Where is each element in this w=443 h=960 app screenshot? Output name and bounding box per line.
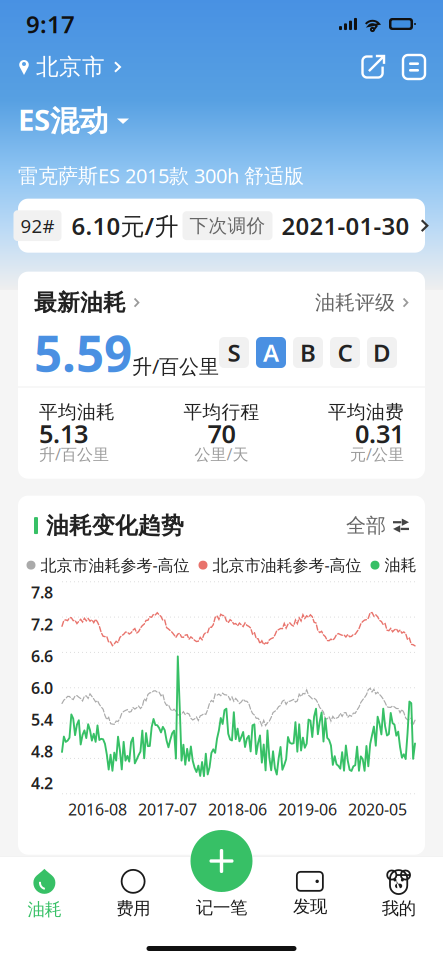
- staticText: 升/百公里: [132, 353, 219, 379]
- button[interactable]: 油耗: [0, 859, 89, 920]
- button[interactable]: 全部: [346, 513, 409, 538]
- button[interactable]: 记一笔: [190, 830, 252, 892]
- button[interactable]: 分享: [361, 55, 385, 79]
- staticText: 6.6: [31, 645, 53, 666]
- button[interactable]: D: [367, 337, 397, 368]
- staticText: 5.13: [39, 417, 88, 450]
- staticText: 北京市油耗参考-高位: [212, 554, 361, 576]
- button[interactable]: 费用: [89, 860, 178, 919]
- button[interactable]: ES混动: [18, 100, 129, 139]
- staticText: 0.31: [355, 417, 404, 450]
- staticText: 北京市油耗参考-高位: [40, 554, 189, 576]
- button[interactable]: 我的: [354, 860, 443, 919]
- staticText: 2019-06: [278, 799, 337, 820]
- staticText: 我的: [382, 898, 416, 919]
- staticText: 油耗: [384, 555, 416, 575]
- staticText: 平均油费: [328, 400, 404, 423]
- staticText: 2021-01-30: [281, 210, 409, 242]
- staticText: 平均行程: [183, 400, 259, 423]
- staticText: ES混动: [18, 100, 108, 139]
- staticText: 7.8: [31, 582, 53, 603]
- staticText: 油耗: [27, 899, 61, 920]
- staticText: 2016-08: [68, 799, 127, 820]
- staticText: 油耗变化趋势: [46, 512, 184, 539]
- button[interactable]: 发现: [265, 862, 354, 917]
- staticText: 平均油耗: [39, 400, 115, 423]
- staticText: A: [263, 337, 279, 368]
- staticText: 2017-07: [138, 799, 197, 820]
- staticText: 4.2: [31, 772, 53, 794]
- staticText: D: [373, 337, 391, 368]
- staticText: 最新油耗: [34, 289, 126, 316]
- staticText: 7.2: [31, 613, 53, 635]
- button[interactable]: 北京市: [18, 49, 122, 85]
- staticText: 4.8: [31, 741, 53, 762]
- button[interactable]: B: [293, 337, 323, 368]
- staticText: 6.10元/升: [71, 210, 178, 242]
- staticText: 北京市: [36, 53, 105, 81]
- staticText: 元/公里: [350, 443, 404, 465]
- staticText: 记一笔: [196, 897, 247, 918]
- button[interactable]: 92#: [18, 199, 425, 253]
- button[interactable]: 记录: [403, 55, 425, 79]
- staticText: 2018-06: [208, 799, 267, 820]
- staticText: 70: [207, 417, 235, 450]
- staticText: 升/百公里: [39, 443, 109, 465]
- staticText: 全部: [346, 513, 386, 538]
- staticText: 92#: [20, 213, 54, 238]
- staticText: S: [227, 337, 240, 368]
- staticText: 公里/天: [194, 443, 248, 465]
- staticText: 9:17: [26, 8, 75, 40]
- button[interactable]: C: [330, 337, 360, 368]
- button[interactable]: 油耗评级: [315, 290, 409, 315]
- staticText: 雷克萨斯ES 2015款 300h 舒适版: [18, 162, 304, 189]
- button[interactable]: S: [219, 337, 249, 368]
- staticText: 2020-05: [348, 799, 407, 820]
- staticText: 下次调价: [189, 214, 265, 237]
- staticText: B: [300, 337, 316, 368]
- staticText: 5.4: [31, 709, 53, 730]
- staticText: 5.59: [34, 320, 132, 385]
- staticText: 油耗评级: [315, 290, 395, 315]
- staticText: 6.0: [31, 677, 53, 698]
- staticText: 费用: [116, 898, 150, 919]
- staticText: C: [337, 337, 352, 368]
- button[interactable]: 最新油耗: [34, 289, 140, 316]
- staticText: 发现: [293, 896, 327, 917]
- button[interactable]: A: [256, 337, 286, 368]
